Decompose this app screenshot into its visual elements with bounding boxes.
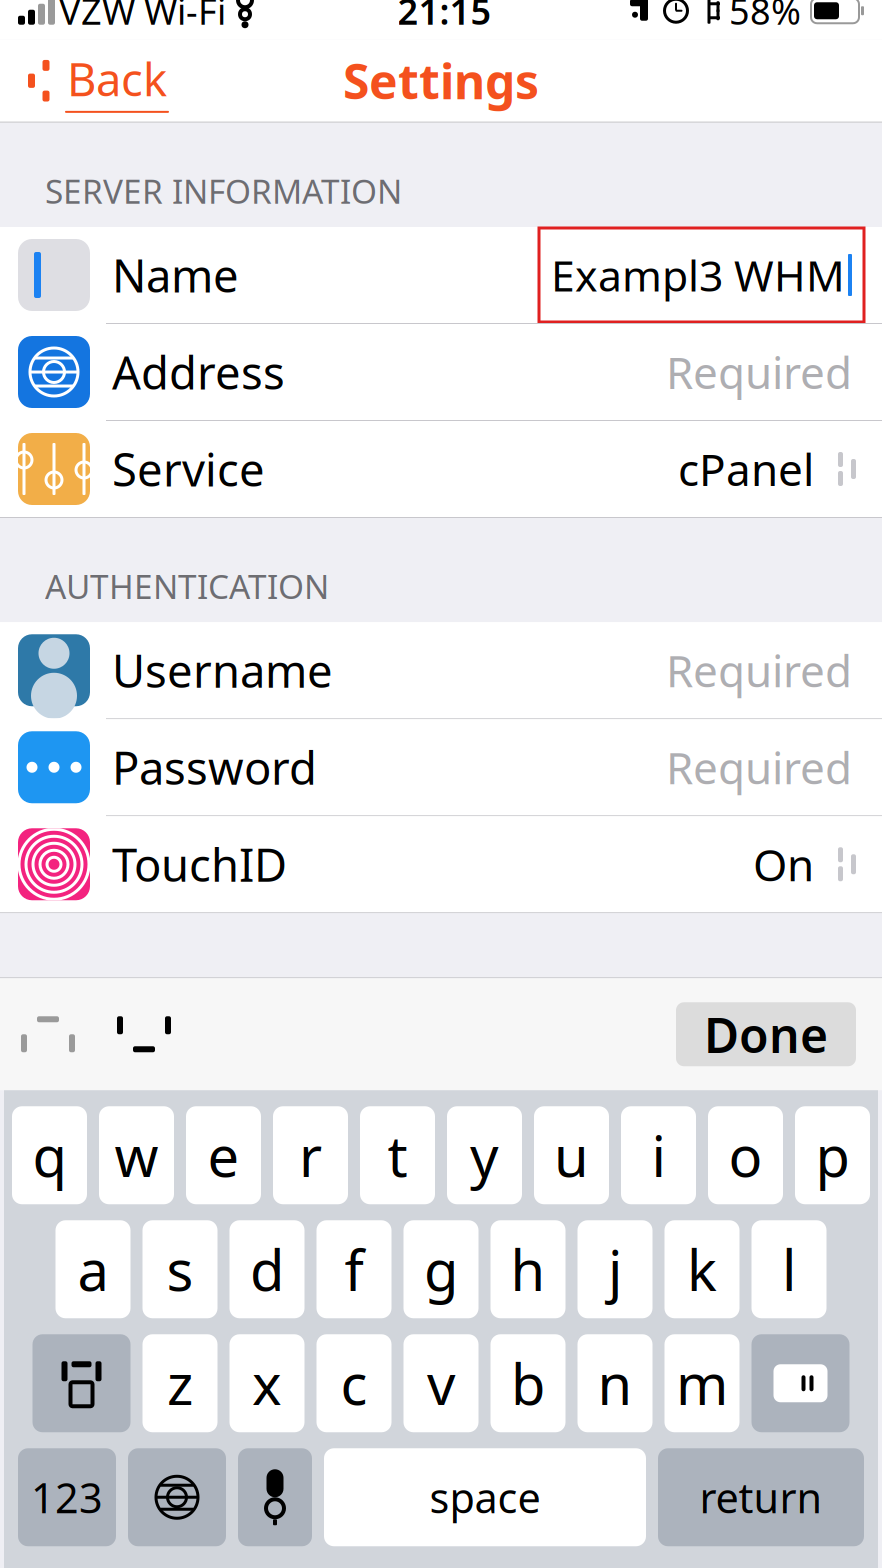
staticText: g [424, 1232, 458, 1306]
button[interactable]: f [316, 1220, 391, 1318]
button[interactable]: Name [0, 227, 882, 323]
staticText: a [77, 1232, 108, 1306]
button[interactable]: m [664, 1334, 739, 1432]
button[interactable]: j [577, 1220, 652, 1318]
button[interactable]: Done [676, 1002, 856, 1066]
button[interactable]: h [490, 1220, 565, 1318]
button[interactable]: p [795, 1106, 870, 1204]
staticText: z [167, 1346, 193, 1420]
button[interactable]: Address [0, 324, 882, 420]
staticText: 123 [31, 1470, 103, 1525]
button[interactable]: w [99, 1106, 174, 1204]
staticText: Required [666, 343, 852, 401]
button[interactable]: x [229, 1334, 304, 1432]
staticText: m [676, 1346, 728, 1420]
staticText: TouchID [112, 834, 287, 894]
staticText: l [782, 1232, 796, 1306]
staticText: p [815, 1118, 849, 1192]
button[interactable]: Next keyboard [128, 1448, 226, 1546]
staticText: e [207, 1118, 239, 1192]
button[interactable]: Password [0, 719, 882, 815]
button[interactable]: q [12, 1106, 87, 1204]
button[interactable]: Delete [751, 1334, 849, 1432]
button[interactable]: b [490, 1334, 565, 1432]
staticText: j [608, 1232, 622, 1306]
staticText: Back [67, 49, 167, 109]
button[interactable]: u [534, 1106, 609, 1204]
staticText: w [114, 1118, 158, 1192]
staticText: t [387, 1118, 407, 1192]
staticText: v [427, 1346, 455, 1420]
staticText: cPanel [678, 440, 814, 498]
button[interactable]: return [658, 1448, 864, 1546]
button[interactable]: r [273, 1106, 348, 1204]
staticText: Password [112, 737, 317, 797]
staticText: SERVER INFORMATION [45, 169, 402, 213]
staticText: s [166, 1232, 193, 1306]
staticText: Required [666, 641, 852, 699]
button[interactable]: d [229, 1220, 304, 1318]
button[interactable]: 123 [18, 1448, 116, 1546]
staticText: u [554, 1118, 589, 1192]
staticText: h [510, 1232, 545, 1306]
staticText: return [699, 1470, 822, 1525]
staticText: AUTHENTICATION [45, 564, 329, 608]
button[interactable]: n [577, 1334, 652, 1432]
button[interactable]: Shift [32, 1334, 130, 1432]
button[interactable]: s [142, 1220, 217, 1318]
staticText: f [344, 1232, 363, 1306]
button[interactable]: TouchID [0, 816, 882, 912]
button[interactable]: c [316, 1334, 391, 1432]
staticText: On [753, 835, 814, 893]
staticText: q [32, 1118, 66, 1192]
staticText: n [597, 1346, 632, 1420]
staticText: Address [112, 342, 285, 402]
button[interactable]: k [664, 1220, 739, 1318]
staticText: k [687, 1232, 717, 1306]
button[interactable]: a [55, 1220, 130, 1318]
staticText: Settings [343, 49, 539, 113]
button[interactable]: g [403, 1220, 478, 1318]
button[interactable]: e [186, 1106, 261, 1204]
staticText: o [728, 1118, 762, 1192]
staticText: Username [112, 640, 333, 700]
button[interactable]: i [621, 1106, 696, 1204]
staticText: i [651, 1118, 665, 1192]
staticText: 58% [729, 0, 801, 35]
staticText: y [470, 1118, 499, 1192]
staticText: Done [704, 1002, 828, 1066]
button[interactable]: t [360, 1106, 435, 1204]
staticText: VZW Wi-Fi [59, 0, 226, 35]
button[interactable]: z [142, 1334, 217, 1432]
button[interactable]: Back [0, 40, 187, 122]
button[interactable]: v [403, 1334, 478, 1432]
button[interactable]: Previous field [0, 978, 96, 1090]
staticText: d [250, 1232, 284, 1306]
staticText: Name [112, 245, 239, 305]
staticText: Required [666, 738, 852, 796]
button[interactable]: l [751, 1220, 826, 1318]
button[interactable]: Next field [96, 978, 192, 1090]
staticText: x [252, 1346, 282, 1420]
button[interactable]: space [324, 1448, 646, 1546]
staticText: r [299, 1118, 322, 1192]
button[interactable]: Dictation [238, 1448, 312, 1546]
staticText: Exampl3 WHM [551, 247, 845, 303]
staticText: 21:15 [397, 0, 491, 35]
button[interactable]: Service [0, 421, 882, 517]
button[interactable]: y [447, 1106, 522, 1204]
staticText: c [340, 1346, 367, 1420]
button[interactable]: Username [0, 622, 882, 718]
button[interactable]: o [708, 1106, 783, 1204]
staticText: Service [112, 439, 265, 499]
staticText: b [511, 1346, 545, 1420]
staticText: space [429, 1470, 540, 1525]
